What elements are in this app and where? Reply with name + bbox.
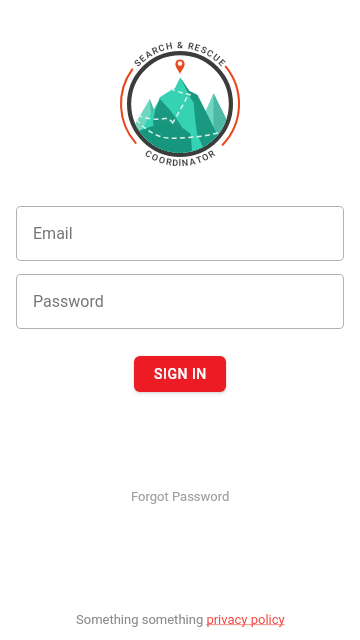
staticText: Email [33,224,73,243]
staticText: SIGN IN [154,366,207,382]
button[interactable]: Password [16,274,344,329]
button[interactable]: Email [16,206,344,261]
button[interactable]: Forgot Password [120,484,240,508]
button[interactable]: Something something privacy policy [0,606,360,632]
staticText: Something something privacy policy [76,612,285,627]
button[interactable]: SIGN IN [134,356,226,392]
staticText: Password [33,292,104,311]
staticText: Forgot Password [131,489,230,504]
